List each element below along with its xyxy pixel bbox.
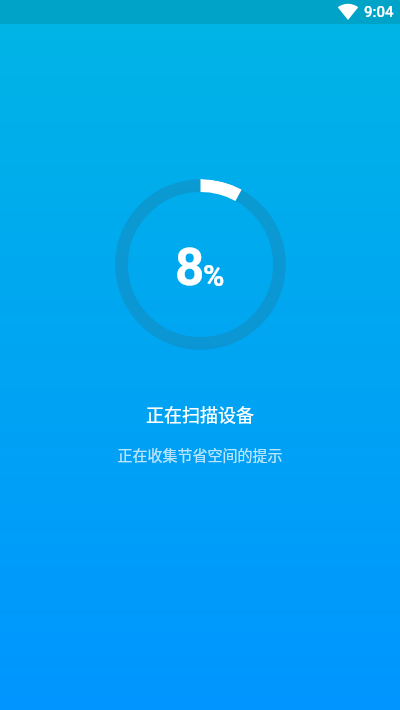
staticText: 正在收集节省空间的提示	[117, 444, 283, 466]
staticText: 正在扫描设备	[146, 401, 254, 427]
staticText: 8	[175, 238, 205, 298]
other: Wi-Fi signal	[338, 4, 358, 20]
button[interactable]: Scan progress 8 percent	[115, 179, 286, 350]
staticText: %	[203, 259, 225, 293]
staticText: 9:04	[364, 3, 394, 21]
